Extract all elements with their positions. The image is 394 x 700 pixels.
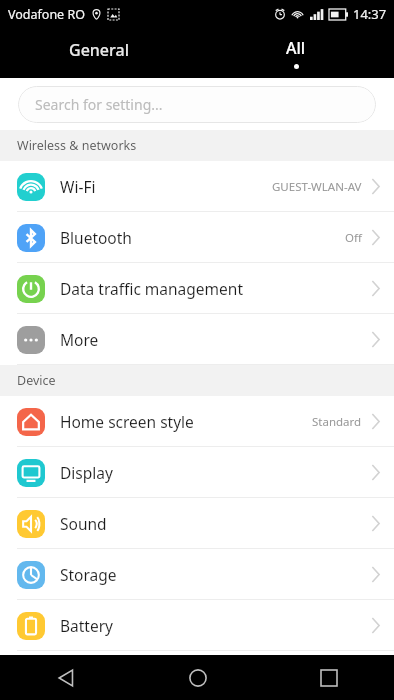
staticText: Standard [312,414,362,430]
staticText: GUEST-WLAN-AV [272,179,362,195]
staticText: 14:37 [353,5,387,23]
staticText: Battery [60,615,371,636]
staticText: Bluetooth [60,227,345,248]
staticText: Device [17,372,56,389]
staticText: Data traffic management [60,278,371,299]
staticText: General [69,39,129,61]
staticText: Sound [60,513,371,534]
button[interactable]: Home [132,655,263,700]
button[interactable]: General [0,28,197,78]
button[interactable]: Display [0,447,394,498]
button[interactable]: Wi-Fi [0,161,394,212]
button[interactable]: All [197,28,394,78]
button[interactable]: Bluetooth [0,212,394,263]
staticText: Home screen style [60,411,312,432]
staticText: Off [345,230,362,246]
staticText: Vodafone RO [8,6,85,23]
button[interactable]: Sound [0,498,394,549]
button[interactable]: Search for setting... [18,86,376,123]
staticText: Wi-Fi [60,176,272,197]
staticText: Storage [60,564,371,585]
button[interactable]: Recent apps [263,655,394,700]
staticText: Search for setting... [35,95,163,114]
staticText: Display [60,462,371,483]
staticText: Wireless & networks [17,137,137,154]
button[interactable]: Battery [0,600,394,651]
button[interactable]: More [0,314,394,365]
button[interactable]: Back [0,655,132,700]
staticText: All [286,37,306,59]
staticText: More [60,329,371,350]
button[interactable]: Home screen style [0,396,394,447]
button[interactable]: Data traffic management [0,263,394,314]
button[interactable]: Storage [0,549,394,600]
